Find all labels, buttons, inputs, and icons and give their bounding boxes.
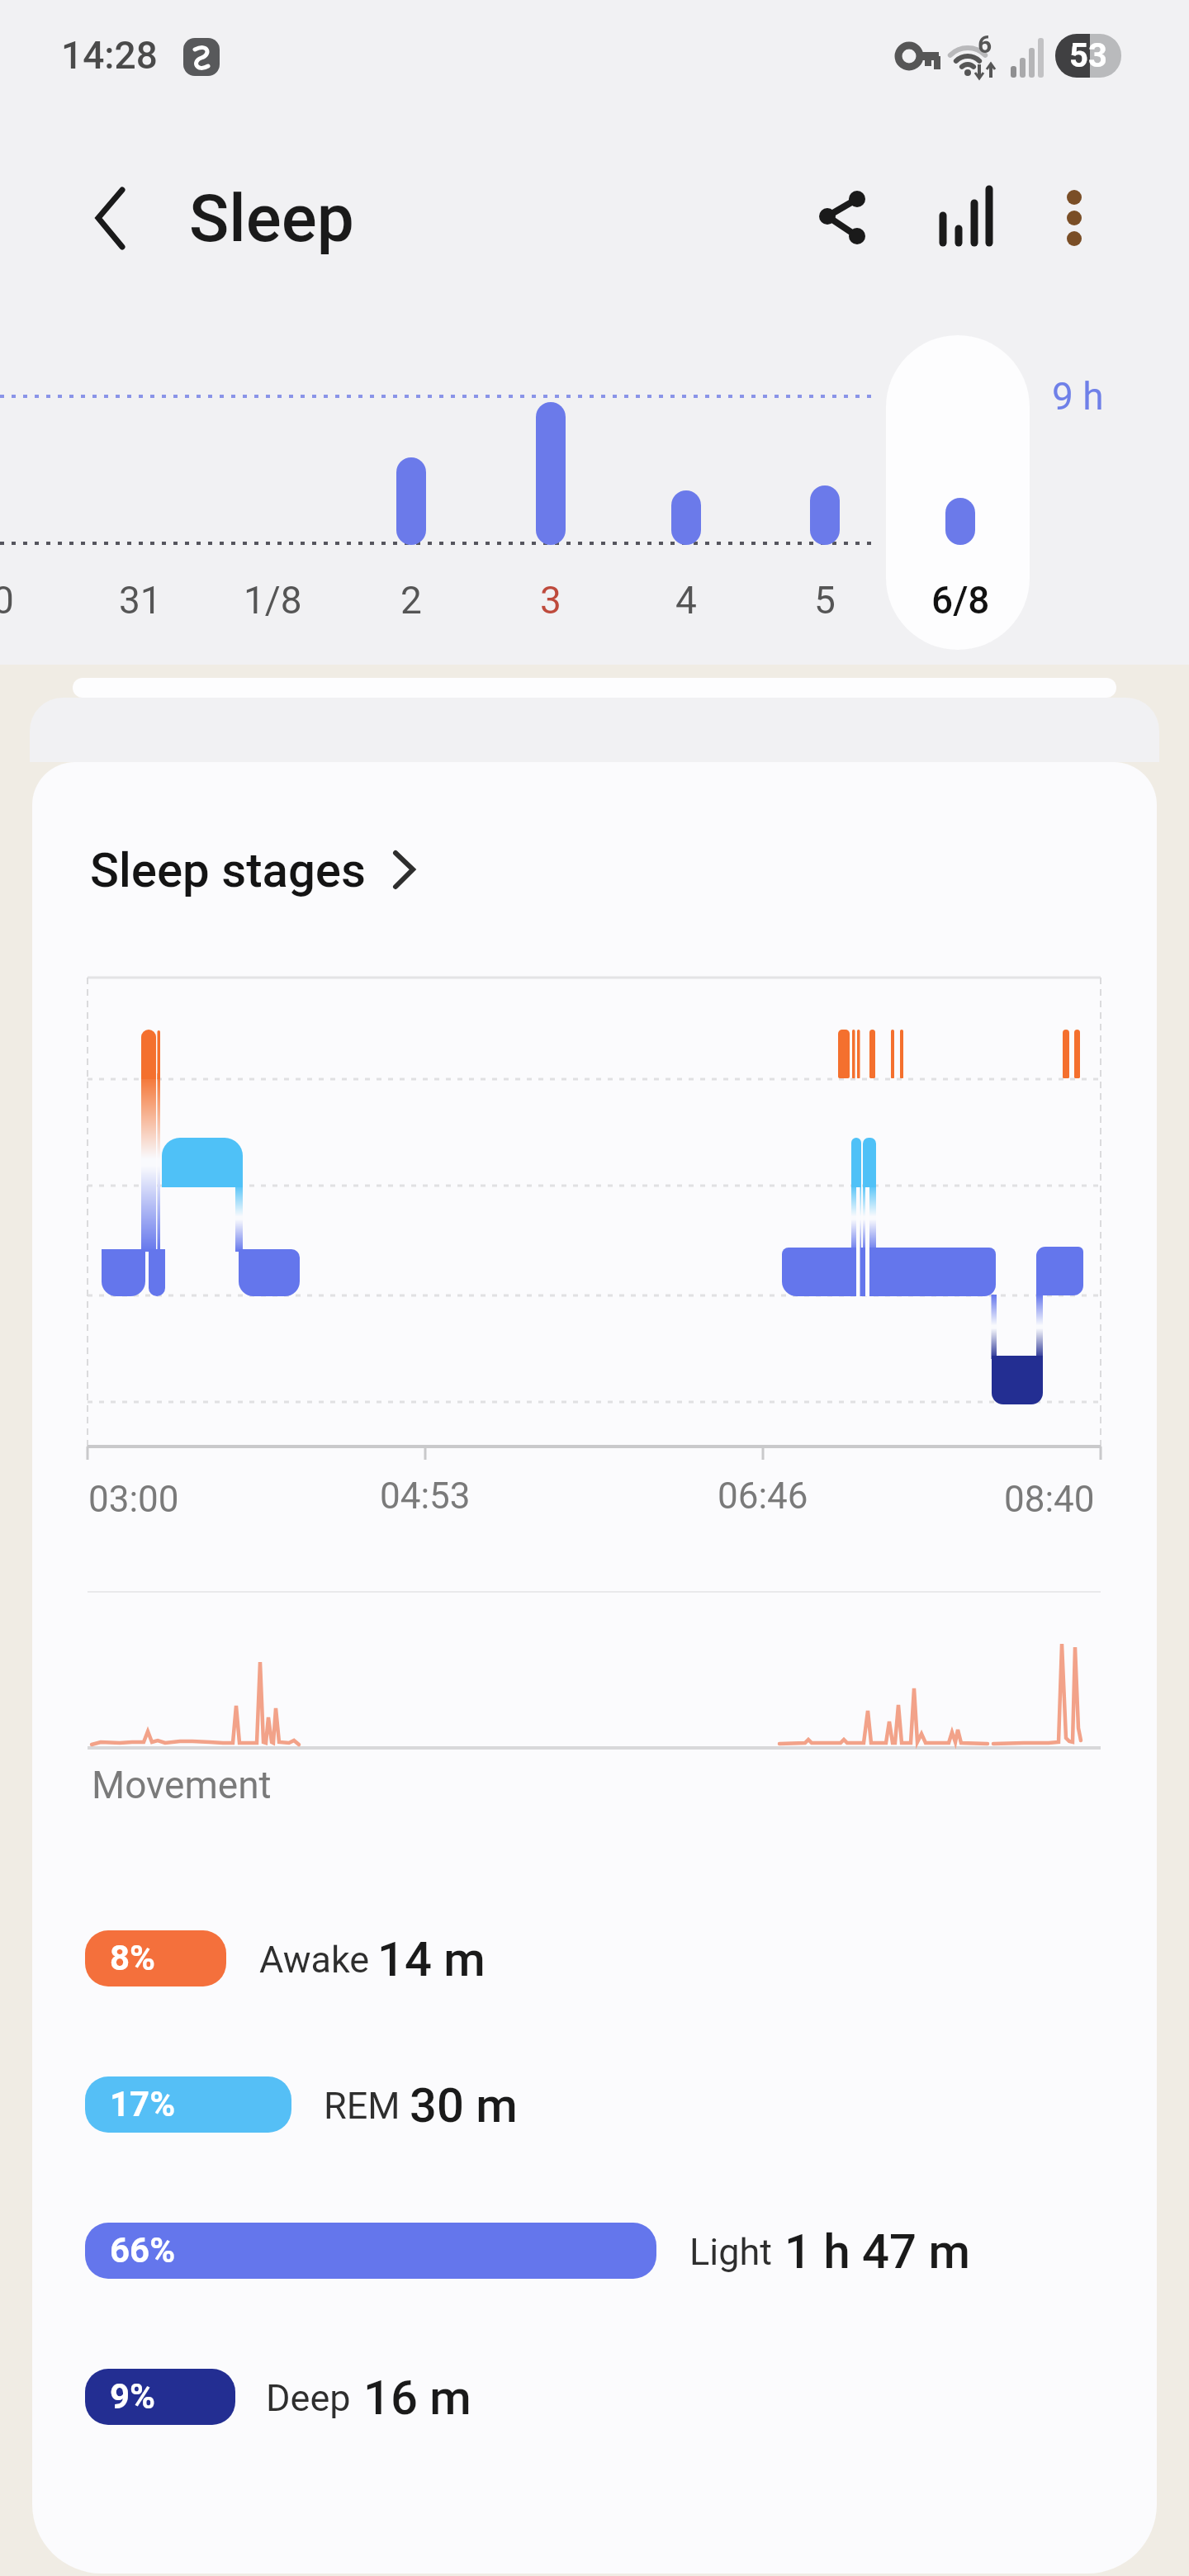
staticText: 06:46 [718,1475,808,1518]
staticText: 30 m [410,2077,518,2133]
staticText: 6 [978,30,992,59]
staticText: 0 [0,578,14,623]
staticText: 03:00 [88,1478,179,1521]
staticText: 9 h [1052,374,1104,419]
staticText: 17% [110,2084,176,2124]
staticText: Light [689,2230,772,2274]
staticText: 3 [540,578,561,623]
staticText: 66% [110,2230,176,2271]
button[interactable] [85,2362,481,2432]
staticText: 04:53 [380,1475,471,1518]
staticText: 16 m [363,2370,471,2426]
button[interactable] [1045,183,1102,253]
button[interactable] [886,335,1030,650]
staticText: 5 [814,578,836,623]
staticText: Sleep stages [90,842,366,898]
staticText: 9% [110,2376,156,2417]
staticText: 14 m [377,1931,486,1987]
staticText: 1/8 [244,578,302,623]
staticText: 2 [400,578,422,623]
staticText: 4 [675,578,697,623]
staticText: Deep [266,2376,351,2420]
staticText: 6/8 [931,578,990,623]
button[interactable] [83,180,157,256]
button[interactable] [85,2216,977,2285]
button[interactable] [83,830,429,908]
staticText: 8% [110,1938,156,1978]
button[interactable] [801,186,879,252]
staticText: Movement [92,1763,272,1807]
staticText: Awake [259,1938,370,1982]
staticText: 53 [1069,36,1107,75]
staticText: 14:28 [61,33,158,78]
staticText: REM [324,2084,400,2128]
staticText: 08:40 [1004,1478,1095,1521]
staticText: 1 h 47 m [784,2223,970,2280]
staticText: Sleep [189,180,354,258]
button[interactable] [85,1924,498,1993]
staticText: 31 [119,578,162,623]
button[interactable] [921,180,1007,253]
button[interactable] [85,2070,531,2139]
